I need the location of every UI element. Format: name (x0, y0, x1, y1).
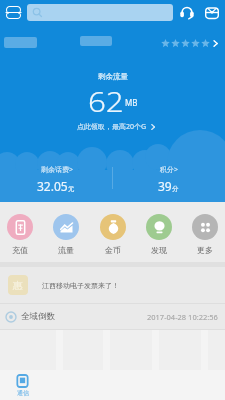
staticText: 分 (172, 185, 179, 193)
button[interactable]: 流量 (53, 202, 79, 255)
staticText: 元 (68, 185, 75, 193)
staticText: 2017-04-28 10:22:56 (147, 312, 218, 322)
button[interactable]: 全域倒数 (0, 304, 225, 329)
staticText: 惠 (13, 279, 23, 292)
staticText: 发现 (151, 245, 167, 255)
button[interactable]: 金币 (100, 202, 126, 255)
button[interactable]: 发现 (146, 202, 172, 255)
button[interactable]: Membership level (161, 39, 220, 48)
button[interactable]: 充值 (7, 202, 33, 255)
button[interactable]: 点此领取，最高20个G (77, 122, 157, 132)
staticText: 更多 (197, 245, 213, 255)
staticText: 62 (88, 84, 124, 120)
staticText: 剩余流量 (98, 72, 128, 81)
staticText: MB (125, 97, 138, 108)
staticText: 剩余话费> (41, 165, 74, 175)
staticText: 积分> (160, 165, 179, 175)
staticText: 流量 (58, 245, 74, 255)
staticText: 点此领取，最高20个G (77, 122, 147, 132)
staticText: 39 (158, 178, 172, 194)
staticText: 江西移动电子发票来了！ (42, 281, 119, 290)
button[interactable]: Gifts (199, 0, 225, 25)
button[interactable] (27, 4, 173, 21)
button[interactable]: 剩余话费> (0, 165, 38, 194)
button[interactable]: 通信 (0, 370, 45, 400)
button[interactable]: 惠 (0, 267, 225, 303)
button[interactable]: Customer service (174, 0, 199, 25)
staticText: 32.05 (37, 178, 68, 194)
staticText: 金币 (105, 245, 121, 255)
staticText: 充值 (12, 245, 28, 255)
staticText: 全域倒数 (21, 311, 55, 322)
button[interactable]: 更多 (192, 202, 218, 255)
staticText: 通信 (17, 389, 29, 397)
button[interactable]: Scan QR code (0, 0, 27, 25)
